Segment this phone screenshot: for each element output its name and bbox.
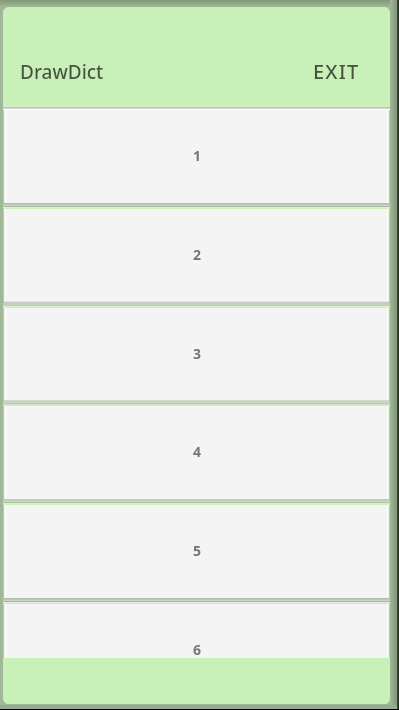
staticText: 3 [193,344,202,363]
button[interactable]: 1 [6,110,387,204]
button[interactable]: EXIT [301,46,372,97]
button[interactable]: 5 [6,505,387,599]
staticText: 2 [193,245,202,264]
button[interactable]: 6 [6,604,387,698]
button[interactable]: 3 [6,308,387,402]
staticText: DrawDict [20,59,104,85]
staticText: EXIT [313,58,360,85]
staticText: 5 [193,541,202,560]
staticText: 6 [193,640,202,659]
staticText: 1 [193,146,202,165]
staticText: 4 [193,442,202,461]
button[interactable]: 4 [6,406,387,500]
button[interactable]: 2 [6,209,387,303]
